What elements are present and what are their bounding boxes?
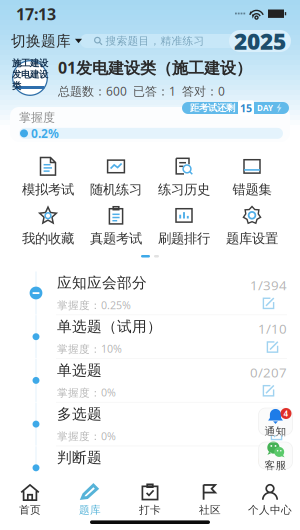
button[interactable]: 多选题 [0, 403, 300, 446]
staticText: 我的收藏 [22, 230, 74, 247]
staticText: 01发电建设类（施工建设） [58, 57, 252, 78]
staticText: 社区 [199, 503, 221, 516]
staticText: 刷题排行 [158, 230, 210, 247]
button[interactable]: 切换题库 [0, 29, 88, 53]
staticText: 通知 [264, 425, 286, 438]
staticText: 单选题（试用） [57, 318, 162, 336]
button[interactable]: 搜索题目，精准练习 [88, 34, 229, 48]
staticText: 总题数：600 已答：1 答对：0 [58, 83, 225, 99]
staticText: 随机练习 [90, 181, 142, 198]
staticText: 首页 [19, 503, 41, 516]
staticText: 掌握度：10% [57, 342, 122, 356]
staticText: 1/394 [250, 276, 287, 294]
staticText: 发电建设类 [12, 69, 48, 92]
staticText: 打卡 [139, 503, 161, 516]
staticText: 0/1 [266, 407, 287, 425]
staticText: 客服 [264, 459, 286, 472]
button[interactable]: 练习历史 [150, 157, 218, 197]
staticText: 切换题库 [11, 32, 71, 50]
button[interactable]: 个人中心 [240, 486, 300, 514]
staticText: 距考试还剩 [190, 102, 235, 114]
staticText: 0/77 [258, 451, 287, 469]
button[interactable]: 打卡 [120, 486, 180, 514]
button[interactable]: 社区 [180, 486, 240, 514]
staticText: 练习历史 [158, 181, 210, 198]
button[interactable]: 应知应会部分 [0, 271, 300, 314]
staticText: 题库设置 [226, 230, 278, 247]
button[interactable]: 通知 [256, 408, 295, 435]
staticText: 2025 [234, 26, 286, 56]
button[interactable]: 我的收藏 [14, 206, 82, 246]
staticText: 掌握度：0.25% [57, 298, 131, 312]
button[interactable]: 模拟考试 [14, 157, 82, 197]
button[interactable]: 判断题 [0, 446, 300, 489]
staticText: 单选题 [57, 361, 102, 379]
staticText: 应知应会部分 [57, 274, 147, 292]
staticText: 判断题 [57, 449, 102, 467]
staticText: 17:13 [16, 3, 56, 25]
staticText: 15 [240, 101, 252, 115]
staticText: 真题考试 [90, 230, 142, 247]
staticText: 0/207 [250, 363, 287, 381]
button[interactable]: 首页 [0, 486, 60, 514]
staticText: 1/10 [258, 320, 287, 337]
staticText: 多选题 [57, 405, 102, 423]
staticText: 0.2% [31, 125, 59, 141]
button[interactable]: 题库 [60, 486, 120, 514]
button[interactable]: 随机练习 [82, 157, 150, 197]
button[interactable]: 真题考试 [82, 206, 150, 246]
staticText: 施工建设 [12, 57, 48, 69]
staticText: 题库 [79, 503, 101, 516]
button[interactable]: 客服 [258, 442, 292, 469]
button[interactable]: 2025 [229, 30, 291, 52]
button[interactable]: 题库设置 [218, 206, 286, 246]
staticText: DAY [257, 103, 273, 113]
staticText: 错题集 [232, 181, 271, 198]
staticText: 模拟考试 [22, 181, 74, 198]
staticText: 个人中心 [248, 503, 292, 516]
button[interactable]: 单选题 [0, 359, 300, 402]
button[interactable]: 错题集 [218, 157, 286, 197]
staticText: 掌握度：0% [57, 473, 116, 487]
staticText: 掌握度：0% [57, 385, 116, 399]
staticText: 4 [283, 408, 288, 419]
staticText: 掌握度：0% [57, 429, 116, 443]
button[interactable]: 刷题排行 [150, 206, 218, 246]
button[interactable]: 单选题（试用） [0, 315, 300, 358]
staticText: 搜索题目，精准练习 [105, 34, 204, 47]
staticText: 掌握度 [19, 110, 55, 125]
